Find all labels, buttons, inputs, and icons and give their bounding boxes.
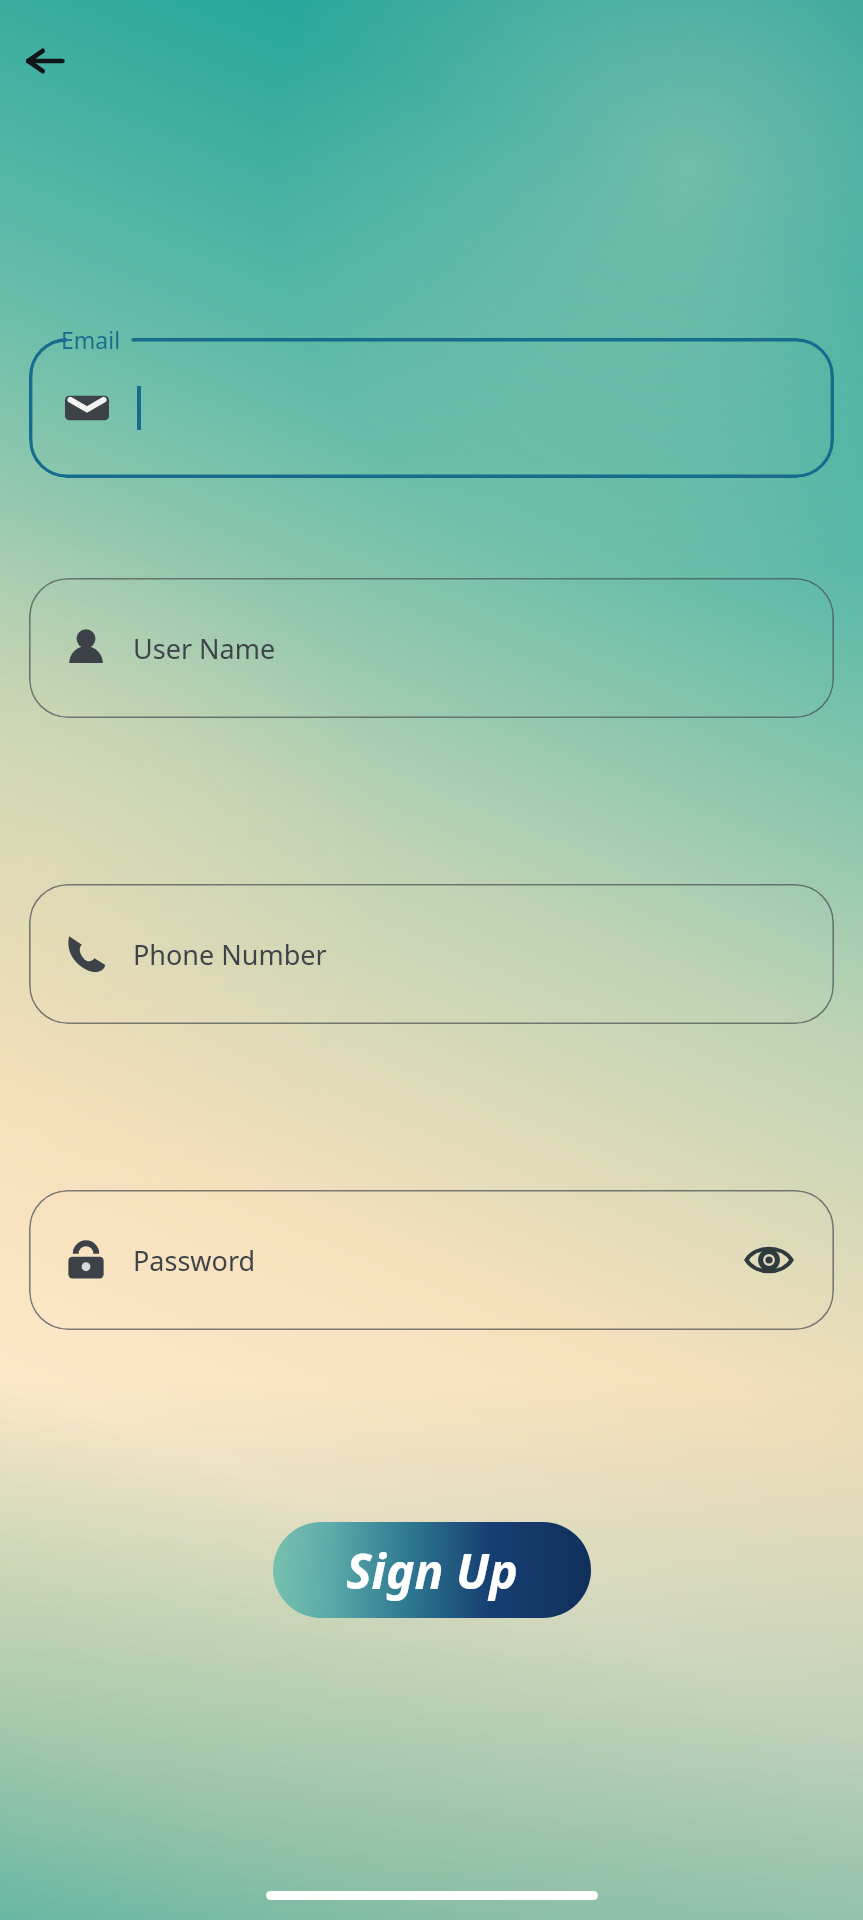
staticText: Password [133,1242,256,1279]
other: Phone number [65,933,107,975]
button[interactable]: Back [14,30,76,92]
staticText: User Name [133,630,276,667]
button[interactable]: Email [29,338,834,478]
button[interactable]: Sign Up [273,1522,591,1618]
button[interactable]: Phone number [29,884,834,1024]
button[interactable]: User name [29,578,834,718]
staticText: Email [61,324,121,355]
button[interactable]: Password [29,1190,834,1330]
other: Password [65,1239,107,1281]
staticText: Phone Number [133,936,327,973]
button[interactable]: Show password [740,1231,798,1289]
staticText: Sign Up [346,1538,518,1603]
other: Email [65,390,109,426]
other: User name [65,627,107,669]
